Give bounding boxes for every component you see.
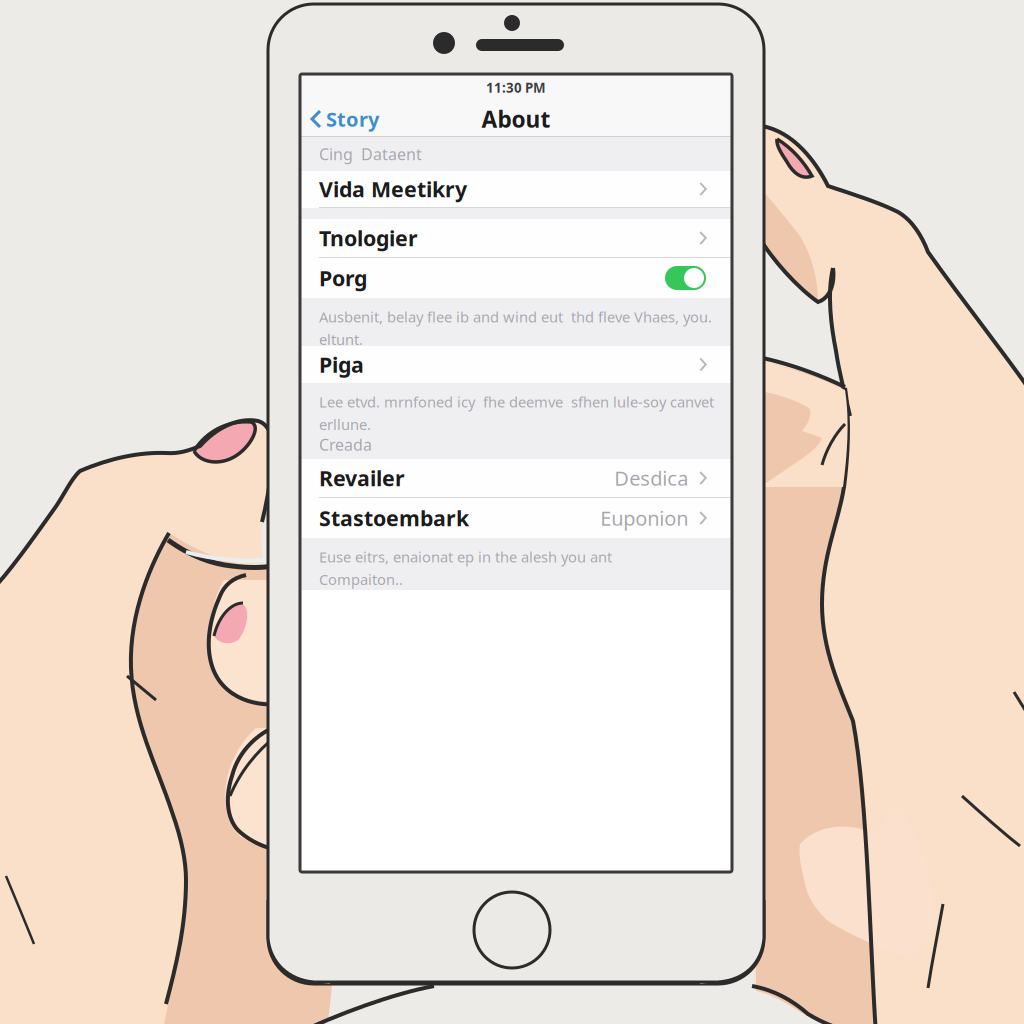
button[interactable]: Vida Meetikry [300, 171, 732, 207]
staticText: Cing Dataent [319, 143, 422, 165]
staticText: Vida Meetikry [319, 175, 467, 203]
staticText: Lee etvd. mrnfoned icy fhe deemve sfhen … [319, 392, 714, 411]
staticText: Tnologier [319, 224, 418, 252]
button[interactable]: Revailer [300, 459, 732, 497]
staticText: Ausbenit, belay flee ib and wind eut thd… [319, 307, 712, 326]
staticText: Euponion [600, 505, 688, 531]
button[interactable]: Back to Story [300, 101, 389, 137]
button[interactable]: Home [474, 892, 550, 968]
staticText: Revailer [319, 464, 405, 492]
staticText: erllune. [319, 414, 371, 434]
staticText: Creada [319, 434, 372, 455]
staticText: About [481, 104, 550, 134]
staticText: Desdica [614, 465, 688, 491]
staticText: Porg [319, 264, 367, 292]
staticText: 11:30 PM [486, 79, 546, 96]
staticText: Stastoembark [319, 504, 469, 532]
staticText: eltunt. [319, 329, 363, 349]
staticText: Compaiton.. [319, 569, 403, 589]
button[interactable]: Tnologier [300, 219, 732, 257]
button[interactable]: Piga [300, 346, 732, 383]
staticText: Story [326, 106, 379, 132]
button[interactable]: Stastoembark [300, 498, 732, 538]
button[interactable]: Porg [300, 258, 732, 298]
staticText: Euse eitrs, enaionat ep in the alesh you… [319, 547, 612, 566]
staticText: Piga [319, 350, 364, 379]
